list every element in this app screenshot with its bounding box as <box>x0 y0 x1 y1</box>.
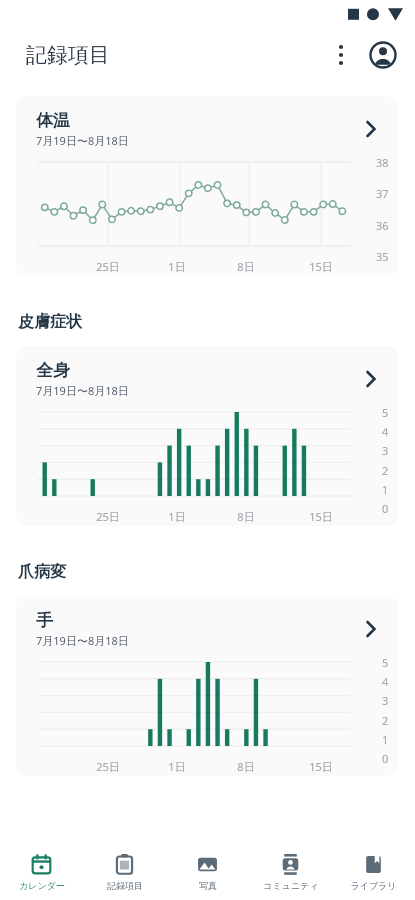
button[interactable]: Account <box>365 37 401 73</box>
button[interactable]: コミュニティ <box>249 844 332 900</box>
button[interactable]: 体温 <box>16 96 399 276</box>
staticText: 37 <box>376 186 389 201</box>
staticText: 4 <box>382 674 389 689</box>
staticText: 爪病変 <box>18 562 66 582</box>
staticText: 4 <box>382 424 389 439</box>
staticText: 2 <box>382 713 389 728</box>
staticText: 15日 <box>309 259 333 274</box>
staticText: ライブラリ <box>350 880 397 891</box>
button[interactable]: 記録項目 <box>83 844 166 900</box>
staticText: 8日 <box>237 259 255 274</box>
staticText: 記録項目 <box>26 42 110 68</box>
staticText: 25日 <box>96 759 120 774</box>
staticText: 8日 <box>237 509 255 524</box>
staticText: 体温 <box>36 110 70 131</box>
staticText: 8日 <box>237 759 255 774</box>
button[interactable]: 写真 <box>166 844 249 900</box>
staticText: 36 <box>376 218 389 233</box>
staticText: 15日 <box>309 509 333 524</box>
staticText: 記録項目 <box>107 880 143 891</box>
staticText: 7月19日〜8月18日 <box>36 133 129 148</box>
staticText: 1日 <box>168 759 186 774</box>
staticText: 7月19日〜8月18日 <box>36 383 129 398</box>
button[interactable]: ライブラリ <box>332 844 415 900</box>
staticText: コミュニティ <box>263 880 319 891</box>
button[interactable]: More options <box>323 37 359 73</box>
staticText: 5 <box>382 655 389 670</box>
button[interactable]: 全身 <box>16 346 399 526</box>
staticText: 25日 <box>96 259 120 274</box>
staticText: 35 <box>376 249 389 264</box>
button[interactable]: 手 <box>16 596 399 776</box>
staticText: 2 <box>382 463 389 478</box>
staticText: 25日 <box>96 509 120 524</box>
staticText: 15日 <box>309 759 333 774</box>
staticText: カレンダー <box>19 880 65 891</box>
staticText: 1日 <box>168 259 186 274</box>
staticText: 皮膚症状 <box>18 312 82 332</box>
staticText: 1日 <box>168 509 186 524</box>
staticText: 全身 <box>36 360 70 381</box>
staticText: 38 <box>376 155 389 170</box>
staticText: 1 <box>382 732 389 747</box>
staticText: 写真 <box>199 880 217 891</box>
button[interactable]: カレンダー <box>0 844 83 900</box>
staticText: 0 <box>382 501 389 516</box>
staticText: 0 <box>382 751 389 766</box>
staticText: 7月19日〜8月18日 <box>36 633 129 648</box>
staticText: 3 <box>382 693 389 708</box>
staticText: 5 <box>382 405 389 420</box>
staticText: 手 <box>36 610 53 631</box>
staticText: 3 <box>382 443 389 458</box>
staticText: 1 <box>382 482 389 497</box>
